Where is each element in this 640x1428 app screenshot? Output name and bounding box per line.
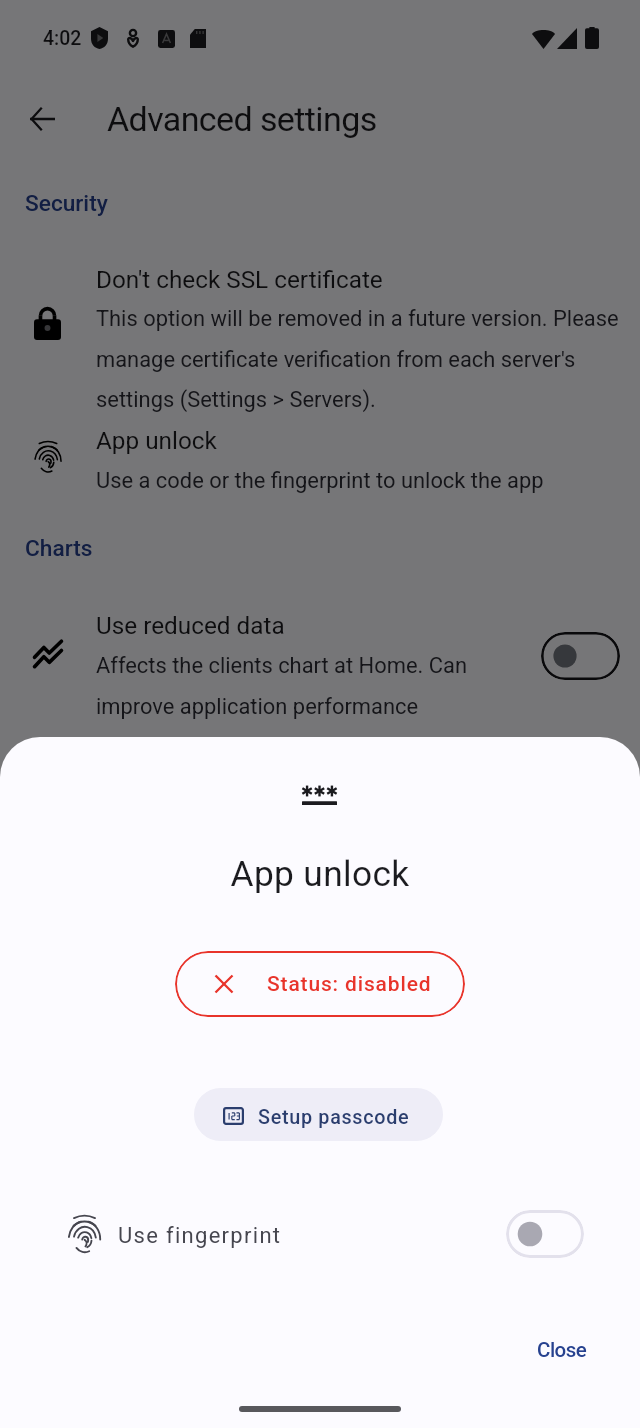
button[interactable]: Toggle (506, 1210, 584, 1258)
button[interactable]: Use fingerprint (0, 1196, 640, 1272)
staticText: Status: disabled (267, 972, 432, 997)
button[interactable]: App unlock (0, 418, 640, 510)
button[interactable]: Don't check SSL certificate (0, 248, 640, 418)
staticText: Setup passcode (258, 1106, 410, 1129)
staticText: Advanced settings (107, 99, 377, 139)
staticText: Security (25, 190, 108, 217)
staticText: Affects the clients chart at Home. Can i… (96, 653, 496, 719)
button[interactable]: Use reduced data (0, 592, 640, 727)
staticText: App unlock (0, 853, 640, 894)
button[interactable]: Close (512, 1318, 612, 1382)
staticText: Charts (25, 535, 93, 562)
staticText: Use a code or the fingerprint to unlock … (96, 468, 624, 494)
staticText: Use fingerprint (118, 1223, 282, 1249)
staticText: 4:02 (43, 27, 82, 50)
button[interactable]: Setup passcode (194, 1088, 443, 1141)
staticText: This option will be removed in a future … (96, 306, 624, 412)
staticText: Don't check SSL certificate (96, 265, 383, 293)
button[interactable]: Status: disabled (175, 951, 465, 1017)
staticText: Close (537, 1338, 587, 1362)
staticText: App unlock (96, 426, 217, 454)
button[interactable]: Back (14, 91, 70, 147)
button[interactable]: Toggle (541, 632, 620, 680)
staticText: Use reduced data (96, 611, 285, 639)
